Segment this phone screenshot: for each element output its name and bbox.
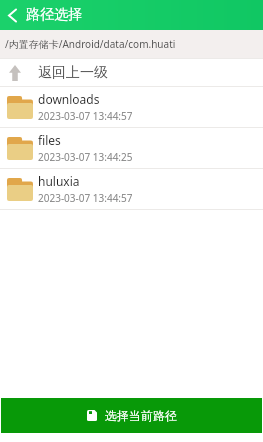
staticText: downloads xyxy=(38,91,100,107)
staticText: 2023-03-07 13:44:25 xyxy=(38,150,133,164)
staticText: 2023-03-07 13:44:57 xyxy=(38,109,133,123)
staticText: 选择当前路径 xyxy=(105,408,177,423)
staticText: files xyxy=(38,132,61,148)
staticText: /内置存储卡/Android/data/com.huati xyxy=(5,37,176,51)
button[interactable]: 选择当前路径 xyxy=(1,398,262,433)
staticText: 返回上一级 xyxy=(38,64,108,82)
button[interactable]: 返回上一级 xyxy=(0,59,263,86)
button[interactable]: huluxia xyxy=(0,169,263,209)
button[interactable]: 路径选择 xyxy=(0,0,263,30)
button[interactable]: downloads xyxy=(0,87,263,127)
button[interactable]: files xyxy=(0,128,263,168)
staticText: 2023-03-07 13:44:57 xyxy=(38,191,133,205)
staticText: 路径选择 xyxy=(26,6,82,24)
staticText: huluxia xyxy=(38,173,80,189)
